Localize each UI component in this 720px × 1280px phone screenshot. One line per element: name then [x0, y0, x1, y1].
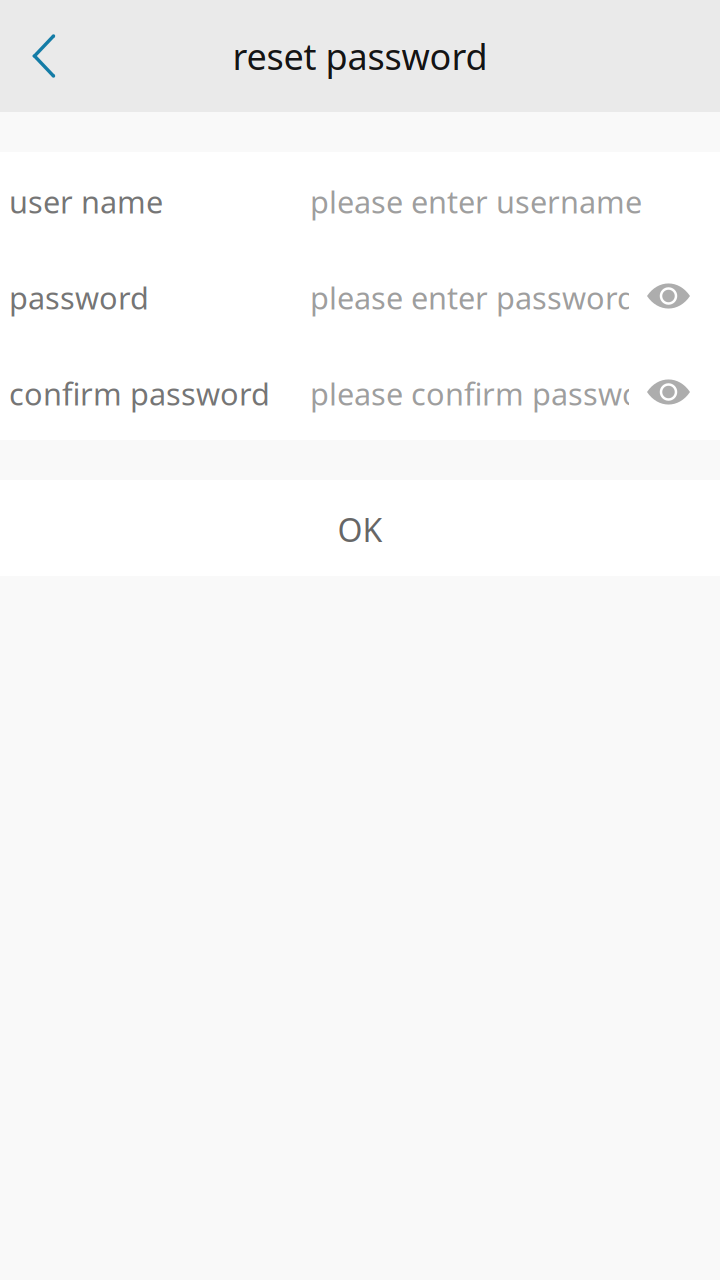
- button[interactable]: Show confirm password: [630, 344, 707, 440]
- staticText: please enter username: [310, 181, 642, 222]
- textField[interactable]: please enter username: [310, 152, 710, 248]
- button[interactable]: OK: [0, 480, 720, 576]
- staticText: user name: [9, 181, 163, 222]
- staticText: reset password: [232, 32, 487, 80]
- button[interactable]: Back: [0, 0, 88, 112]
- staticText: OK: [337, 508, 382, 551]
- secureTextField[interactable]: please confirm password: [310, 344, 629, 440]
- secureTextField[interactable]: please enter password: [310, 248, 629, 344]
- staticText: password: [9, 277, 149, 318]
- staticText: confirm password: [9, 373, 270, 414]
- button[interactable]: Show password: [630, 248, 707, 344]
- staticText: please confirm password: [310, 373, 672, 414]
- staticText: please enter password: [310, 277, 636, 318]
